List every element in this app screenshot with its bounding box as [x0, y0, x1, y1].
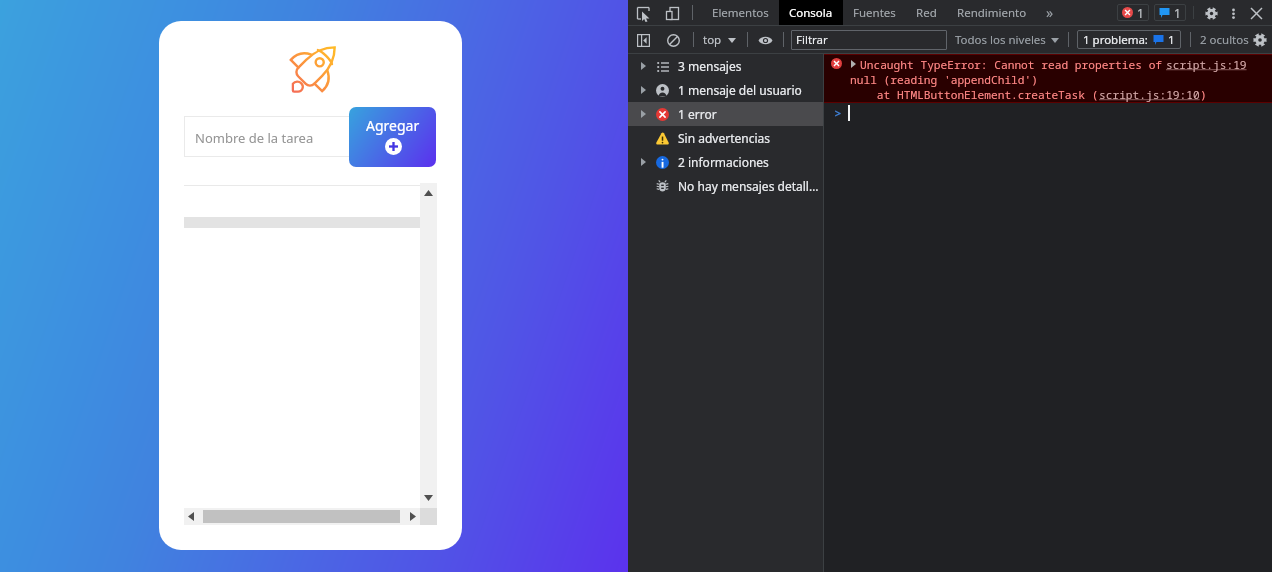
button[interactable]: Barra de desplazamiento horizontal: [184, 508, 420, 525]
button[interactable]: top: [703, 32, 736, 48]
button[interactable]: Filtrar: [791, 30, 947, 50]
button[interactable]: Sin advertencias: [628, 126, 823, 150]
staticText: Sin advertencias: [678, 130, 771, 146]
staticText: Todos los niveles: [955, 32, 1046, 48]
button[interactable]: 1 problema:: [1077, 30, 1181, 49]
staticText: 1 error: [678, 106, 717, 122]
staticText: Rendimiento: [957, 5, 1027, 21]
staticText: script.js:19:10: [1099, 87, 1200, 102]
staticText: Uncaught TypeError: Cannot read properti…: [860, 57, 1163, 72]
button[interactable]: Mas opciones: [1222, 2, 1244, 24]
button[interactable]: 3 mensajes: [628, 54, 823, 78]
button[interactable]: Mas pestanas: [1037, 0, 1063, 25]
staticText: Agregar: [366, 116, 420, 135]
button[interactable]: 2 informaciones: [628, 150, 823, 174]
staticText: Nombre de la tarea: [195, 129, 314, 147]
button[interactable]: Alternar barra de dispositivos: [660, 1, 684, 25]
button[interactable]: Borrar consola: [664, 31, 682, 49]
button[interactable]: 1: [1154, 4, 1186, 21]
staticText: 3 mensajes: [678, 58, 742, 74]
staticText: Red: [916, 5, 937, 21]
staticText: 1 problema:: [1083, 32, 1148, 48]
button[interactable]: Cerrar: [1244, 1, 1268, 25]
staticText: top: [703, 32, 722, 48]
button[interactable]: Red: [906, 0, 947, 25]
staticText: Filtrar: [796, 32, 828, 48]
button[interactable]: Configuracion de consola: [1249, 29, 1271, 51]
button[interactable]: Todos los niveles: [955, 32, 1059, 48]
button[interactable]: Barra de desplazamiento vertical: [420, 183, 437, 508]
button[interactable]: Rendimiento: [947, 0, 1037, 25]
button[interactable]: No hay mensajes detallad…: [628, 174, 823, 198]
button[interactable]: Nombre de la tarea: [184, 116, 376, 157]
staticText: >: [834, 104, 842, 122]
button[interactable]: Uncaught TypeError: Cannot read properti…: [824, 54, 1272, 103]
button[interactable]: Opciones de consola: [756, 31, 774, 49]
button[interactable]: Fuentes: [843, 0, 906, 25]
button[interactable]: script.js:19: [1166, 57, 1247, 72]
staticText: Fuentes: [853, 5, 896, 21]
button[interactable]: Configuracion: [1200, 2, 1222, 24]
button[interactable]: Elementos: [702, 0, 779, 25]
staticText: 1: [1168, 32, 1175, 48]
button[interactable]: Consola: [779, 0, 843, 25]
staticText: ): [1200, 87, 1207, 102]
button[interactable]: Agregar: [349, 107, 436, 167]
staticText: »: [1046, 3, 1054, 22]
staticText: 2 informaciones: [678, 154, 769, 170]
staticText: Consola: [789, 5, 833, 21]
staticText: 1: [1174, 5, 1181, 21]
button[interactable]: 1 error: [628, 102, 823, 126]
staticText: script.js:19: [1166, 57, 1247, 72]
button[interactable]: Inspeccionar elemento: [631, 1, 655, 25]
staticText: Elementos: [712, 5, 769, 21]
button[interactable]: Mostrar barra lateral: [634, 31, 652, 49]
staticText: null (reading 'appendChild'): [850, 72, 1038, 87]
staticText: 1 mensaje del usuario: [678, 82, 802, 98]
staticText: 2 ocultos: [1200, 32, 1249, 48]
button[interactable]: 1: [1117, 4, 1149, 21]
staticText: No hay mensajes detallad…: [678, 178, 823, 194]
staticText: 1: [1137, 5, 1144, 21]
button[interactable]: 1 mensaje del usuario: [628, 78, 823, 102]
staticText: at HTMLButtonElement.createTask (: [850, 87, 1099, 102]
